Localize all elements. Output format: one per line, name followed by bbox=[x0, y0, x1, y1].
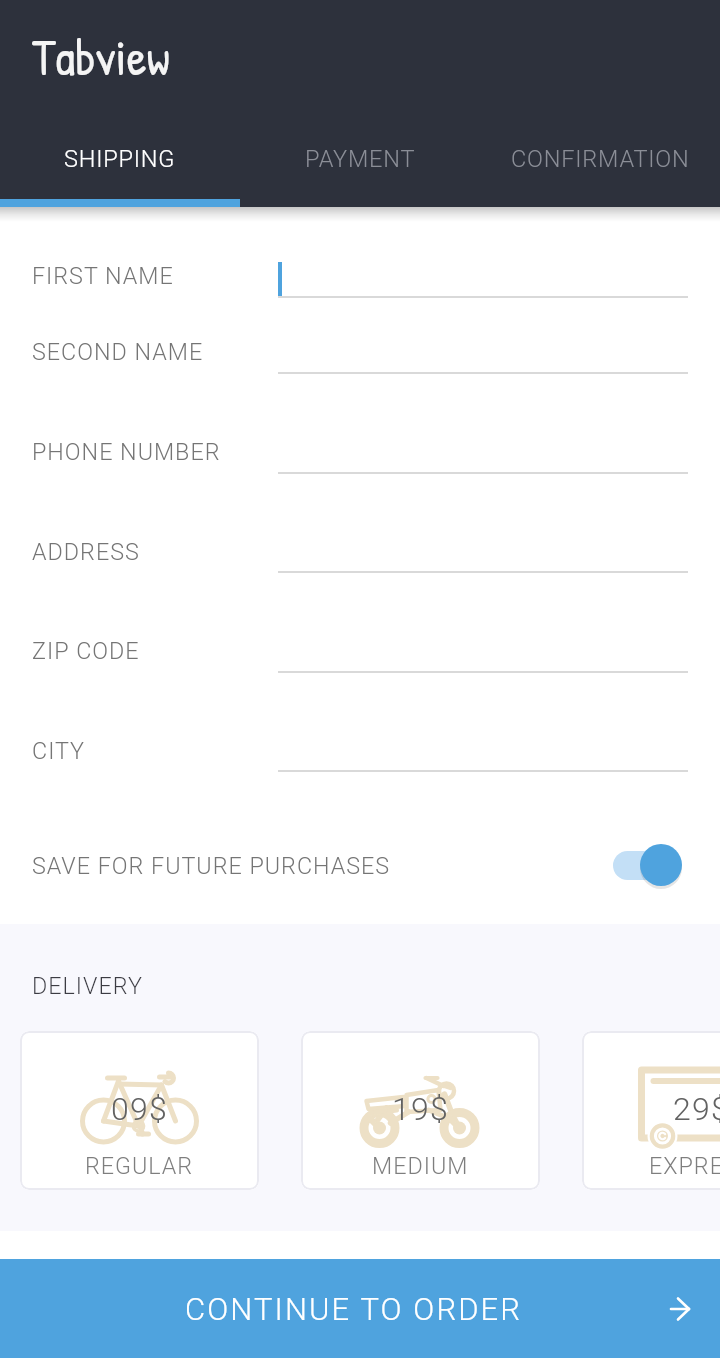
staticText: CITY bbox=[32, 737, 86, 764]
staticText: EXPRESS bbox=[649, 1152, 720, 1179]
staticText: ADDRESS bbox=[32, 538, 140, 565]
button[interactable] bbox=[0, 330, 720, 382]
staticText: ZIP CODE bbox=[32, 637, 140, 664]
other: Continue to order bbox=[670, 1297, 690, 1321]
button[interactable]: CONTINUE TO ORDER bbox=[0, 1259, 720, 1358]
button[interactable]: 19$ bbox=[301, 1031, 540, 1190]
staticText: MEDIUM bbox=[372, 1152, 469, 1179]
button[interactable]: 09$ bbox=[20, 1031, 259, 1190]
button[interactable]: PAYMENT bbox=[240, 135, 480, 183]
staticText: DELIVERY bbox=[32, 972, 143, 999]
staticText: SHIPPING bbox=[64, 145, 176, 173]
staticText: FIRST NAME bbox=[32, 262, 174, 289]
staticText: CONFIRMATION bbox=[511, 145, 690, 173]
button[interactable] bbox=[0, 430, 720, 482]
button[interactable] bbox=[0, 629, 720, 681]
staticText: PAYMENT bbox=[305, 145, 416, 173]
staticText: 29$ bbox=[673, 1090, 720, 1128]
button[interactable] bbox=[0, 529, 720, 581]
staticText: 19$ bbox=[392, 1090, 449, 1128]
button[interactable]: CONFIRMATION bbox=[480, 135, 720, 183]
staticText: PHONE NUMBER bbox=[32, 438, 221, 465]
staticText: REGULAR bbox=[85, 1152, 194, 1179]
staticText: SAVE FOR FUTURE PURCHASES bbox=[32, 852, 391, 879]
button[interactable] bbox=[0, 254, 720, 306]
button[interactable]: SAVE FOR FUTURE PURCHASES bbox=[0, 832, 720, 898]
button[interactable] bbox=[0, 728, 720, 780]
button[interactable]: SHIPPING bbox=[0, 135, 240, 183]
button[interactable]: 29$ bbox=[582, 1031, 720, 1190]
staticText: 09$ bbox=[111, 1090, 168, 1128]
staticText: Tabview bbox=[32, 23, 170, 91]
staticText: CONTINUE TO ORDER bbox=[185, 1291, 523, 1327]
staticText: SECOND NAME bbox=[32, 338, 204, 365]
